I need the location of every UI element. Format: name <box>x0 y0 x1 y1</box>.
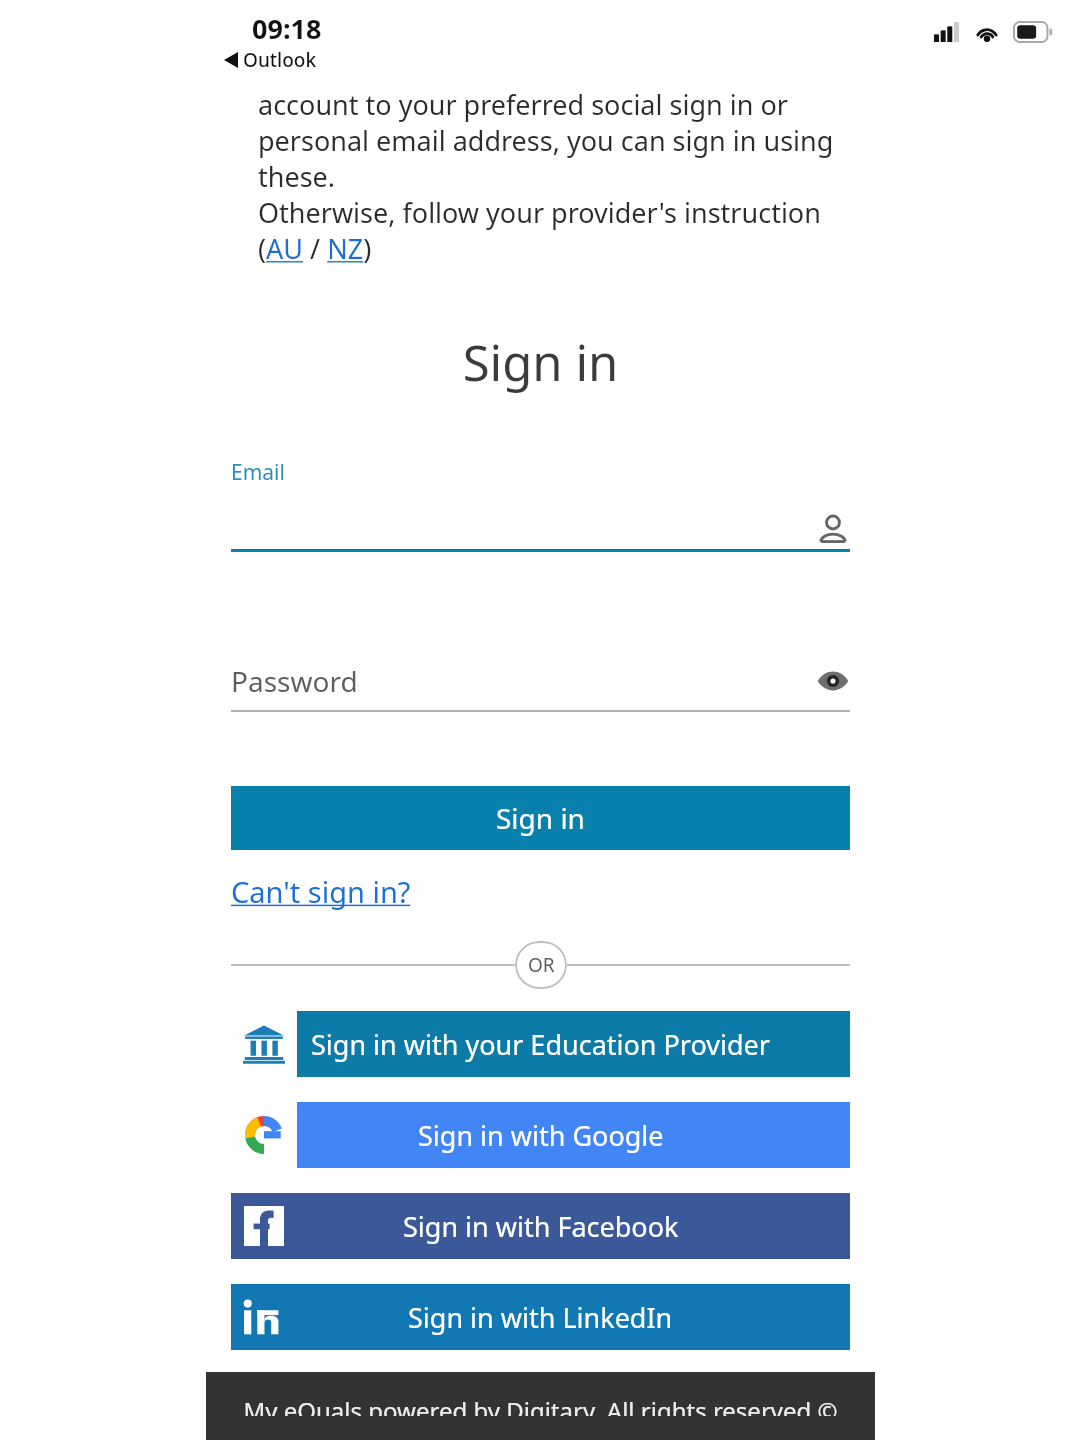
other: Facebook <box>244 1206 284 1246</box>
staticText: Sign in <box>496 799 585 837</box>
button[interactable]: Sign in <box>231 786 850 850</box>
staticText: Sign in <box>206 329 875 396</box>
staticText: Sign in with your Education Provider <box>311 1026 770 1063</box>
staticText: Outlook <box>243 47 317 73</box>
button[interactable]: Password <box>231 660 850 712</box>
staticText: Sign in with Google <box>418 1117 664 1154</box>
button[interactable]: Education provider <box>231 1011 850 1077</box>
button[interactable]: Facebook <box>231 1193 850 1259</box>
other: Google <box>245 1116 283 1154</box>
staticText: OR <box>528 952 555 978</box>
staticText: Sign in with Facebook <box>403 1208 679 1245</box>
button[interactable]: Can't sign in? <box>231 872 411 911</box>
button[interactable]: Google <box>231 1102 850 1168</box>
staticText: account to your preferred social sign in… <box>258 86 855 267</box>
staticText: Password <box>231 662 358 700</box>
staticText: Sign in with LinkedIn <box>408 1299 673 1336</box>
staticText: 09:18 <box>252 10 322 47</box>
staticText: Email <box>231 458 285 487</box>
staticText: My eQuals powered by Digitary. All right… <box>206 1394 875 1416</box>
other: LinkedIn <box>240 1293 288 1341</box>
button[interactable]: LinkedIn <box>231 1284 850 1350</box>
button[interactable]: Email <box>231 458 850 552</box>
other: Education provider <box>243 1023 285 1065</box>
